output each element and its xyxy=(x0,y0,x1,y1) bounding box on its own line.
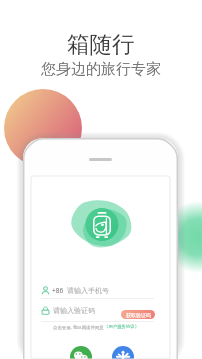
button[interactable]: 获取验证码 xyxy=(121,310,155,319)
button[interactable]: WeChat login xyxy=(70,346,92,359)
staticText: 请输入手机号 xyxy=(67,286,109,295)
staticText: 《用户服务协议》 xyxy=(104,324,140,330)
staticText: 您身边的旅行专家 xyxy=(41,60,161,79)
button[interactable]: +86 xyxy=(41,282,154,298)
staticText: +86 xyxy=(52,286,64,295)
staticText: 请输入验证码 xyxy=(53,306,95,315)
staticText: 点击登录, 我已阅读并同意 xyxy=(53,324,104,330)
button[interactable]: 《用户服务协议》 xyxy=(104,324,140,330)
staticText: 箱随行 xyxy=(67,30,135,58)
button[interactable]: Alipay login xyxy=(112,346,134,359)
staticText: 获取验证码 xyxy=(126,312,151,318)
